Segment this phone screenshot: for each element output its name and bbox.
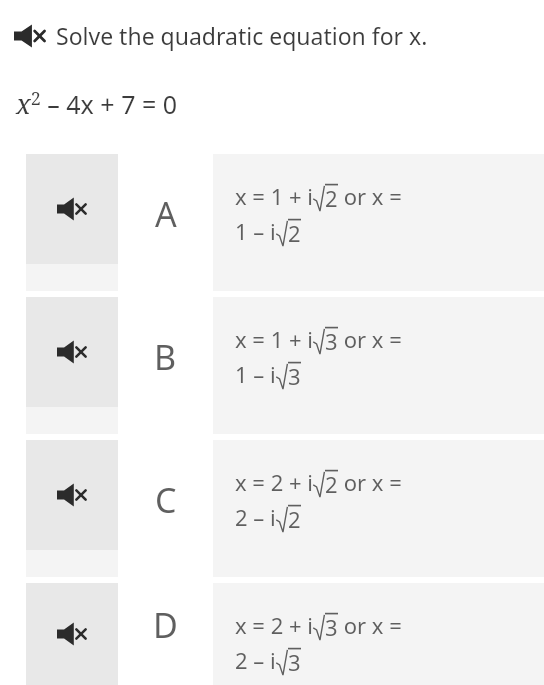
staticText: 3: [325, 612, 338, 641]
staticText: D: [153, 602, 178, 648]
button[interactable]: Play audio for option D: [26, 583, 118, 685]
button[interactable]: Play audio for option A: [26, 154, 544, 291]
staticText: or x =: [338, 610, 402, 640]
staticText: x = 2 + i: [235, 610, 313, 640]
staticText: 2 – i: [235, 502, 276, 532]
staticText: 2 – i: [235, 645, 276, 675]
button[interactable]: Play audio for option B: [26, 297, 544, 434]
staticText: A: [155, 191, 177, 237]
staticText: Solve the quadratic equation for x.: [56, 20, 428, 51]
staticText: or x =: [338, 181, 402, 211]
button[interactable]: Play audio for option C: [26, 440, 544, 577]
button[interactable]: Play audio for option C: [26, 440, 118, 550]
staticText: 1 – i: [235, 216, 276, 246]
staticText: or x =: [338, 324, 402, 354]
staticText: 2: [288, 504, 301, 533]
staticText: 2: [325, 469, 338, 498]
staticText: x = 1 + i: [235, 181, 313, 211]
button[interactable]: Play question audio: [14, 23, 46, 49]
staticText: 2: [288, 218, 301, 247]
staticText: C: [155, 477, 177, 523]
staticText: 2: [325, 183, 338, 212]
staticText: B: [154, 334, 177, 380]
staticText: or x =: [338, 467, 402, 497]
staticText: 3: [288, 361, 301, 390]
button[interactable]: Play audio for option B: [26, 297, 118, 407]
staticText: x2 – 4x + 7 = 0: [16, 85, 178, 122]
button[interactable]: Play audio for option D: [26, 583, 544, 685]
staticText: x = 2 + i: [235, 467, 313, 497]
button[interactable]: Play question audio: [14, 20, 532, 51]
staticText: 1 – i: [235, 359, 276, 389]
button[interactable]: Play audio for option A: [26, 154, 118, 264]
staticText: x = 1 + i: [235, 324, 313, 354]
staticText: 3: [288, 647, 301, 676]
staticText: 3: [325, 326, 338, 355]
